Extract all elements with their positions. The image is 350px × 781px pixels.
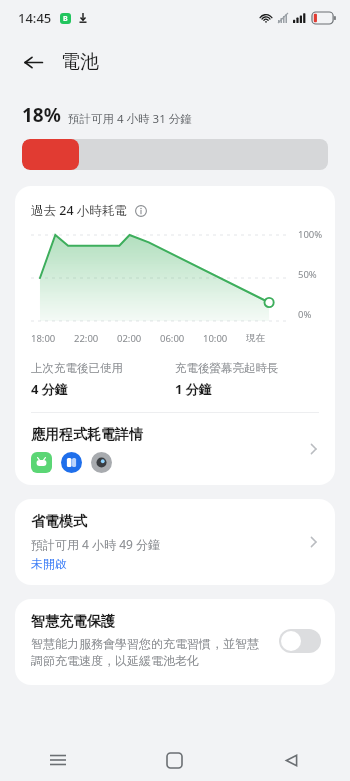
staticText: 22:00 bbox=[74, 332, 117, 345]
staticText: 過去 24 小時耗電 bbox=[31, 202, 127, 219]
button[interactable]: 智慧充電保護 bbox=[15, 599, 335, 685]
button[interactable]: 應用程式耗電詳情 bbox=[15, 413, 335, 485]
staticText: 智慧能力服務會學習您的充電習慣，並智慧調節充電速度，以延緩電池老化 bbox=[31, 636, 269, 669]
staticText: 現在 bbox=[246, 332, 289, 344]
staticText: 充電後螢幕亮起時長 bbox=[175, 361, 279, 375]
staticText: 4 分鐘 bbox=[31, 380, 68, 398]
button[interactable]: 資訊 bbox=[132, 202, 149, 219]
button[interactable]: Back bbox=[16, 45, 50, 79]
staticText: 未開啟 bbox=[31, 556, 67, 571]
staticText: 18% bbox=[22, 102, 61, 128]
staticText: 10:00 bbox=[203, 332, 246, 345]
button[interactable]: 智慧充電保護開關 bbox=[279, 629, 321, 653]
button[interactable]: Back bbox=[233, 739, 350, 781]
staticText: B bbox=[63, 14, 68, 24]
staticText: 省電模式 bbox=[31, 513, 87, 531]
button[interactable]: 省電模式 bbox=[15, 499, 335, 585]
staticText: 06:00 bbox=[160, 332, 203, 345]
staticText: 18:00 bbox=[31, 332, 74, 345]
button[interactable]: Home bbox=[116, 739, 233, 781]
staticText: 50% bbox=[298, 268, 317, 281]
staticText: 02:00 bbox=[117, 332, 160, 345]
staticText: 14:45 bbox=[18, 9, 52, 27]
staticText: 上次充電後已使用 bbox=[31, 361, 123, 375]
staticText: 應用程式耗電詳情 bbox=[31, 426, 143, 444]
staticText: 電池 bbox=[61, 50, 99, 74]
staticText: 100% bbox=[298, 228, 323, 241]
staticText: 0% bbox=[298, 308, 312, 321]
button[interactable]: Recents bbox=[0, 739, 116, 781]
staticText: 預計可用 4 小時 31 分鐘 bbox=[68, 111, 192, 127]
staticText: 1 分鐘 bbox=[175, 380, 212, 398]
staticText: 智慧充電保護 bbox=[31, 613, 115, 631]
staticText: 預計可用 4 小時 49 分鐘 bbox=[31, 536, 161, 552]
